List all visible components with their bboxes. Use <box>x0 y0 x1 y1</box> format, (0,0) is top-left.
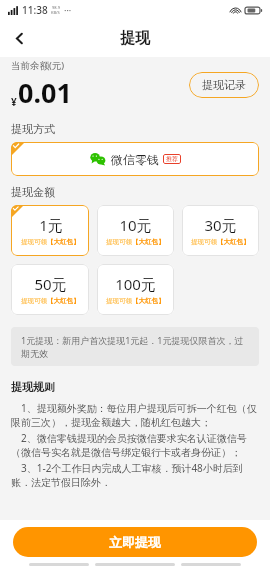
staticText: 提现金额 <box>11 185 55 199</box>
button[interactable]: 1元 <box>11 205 89 256</box>
staticText: 提现可领 <box>21 238 47 246</box>
staticText: 1元 <box>39 215 63 235</box>
staticText: 1、提现额外奖励：每位用户提现后可拆一个红包（仅限前三次），提现金额越大，随机红… <box>11 401 259 429</box>
button[interactable]: 返回 <box>0 20 38 57</box>
button[interactable]: 100元 <box>97 264 174 315</box>
staticText: 提现 <box>120 29 150 48</box>
staticText: 立即提现 <box>109 534 161 550</box>
staticText: 提现记录 <box>202 78 246 92</box>
staticText: 2、微信零钱提现的会员按微信要求实名认证微信号（微信号实名就是微信号绑定银行卡或… <box>11 431 259 459</box>
staticText: 提现可领 <box>21 297 47 305</box>
staticText: 0.01 <box>18 74 72 111</box>
staticText: 提现可领 <box>106 297 132 305</box>
staticText: KB/S <box>51 10 60 15</box>
staticText: 1元提现：新用户首次提现1元起．1元提现仅限首次，过期无效 <box>21 334 249 359</box>
staticText: 50元 <box>34 274 67 294</box>
button[interactable]: 微信零钱 <box>11 142 259 176</box>
staticText: 【大红包】 <box>132 238 165 246</box>
staticText: ¥ <box>11 95 17 109</box>
staticText: 提现可领 <box>191 238 217 246</box>
staticText: 【大红包】 <box>47 238 80 246</box>
staticText: 提现规则 <box>11 380 55 394</box>
button[interactable]: 50元 <box>11 264 89 315</box>
staticText: 3、1-2个工作日内完成人工审核．预计48小时后到账．法定节假日除外． <box>11 461 259 489</box>
staticText: 提现方式 <box>11 122 55 136</box>
button[interactable]: 10元 <box>97 205 174 256</box>
staticText: 100元 <box>115 274 156 294</box>
staticText: 微信零钱 <box>111 152 159 167</box>
staticText: 11:38 <box>22 3 48 17</box>
staticText: 10元 <box>119 215 152 235</box>
staticText: 【大红包】 <box>132 297 165 305</box>
button[interactable]: 立即提现 <box>13 527 257 557</box>
staticText: 98.9 <box>52 5 60 10</box>
staticText: 当前余额(元) <box>11 59 65 72</box>
button[interactable]: 30元 <box>182 205 259 256</box>
staticText: 提现可领 <box>106 238 132 246</box>
button[interactable]: 提现记录 <box>189 72 259 98</box>
staticText: ··· <box>64 4 72 16</box>
staticText: 推荐 <box>166 155 178 163</box>
staticText: 【大红包】 <box>47 297 80 305</box>
staticText: 【大红包】 <box>217 238 250 246</box>
staticText: 30元 <box>204 215 237 235</box>
